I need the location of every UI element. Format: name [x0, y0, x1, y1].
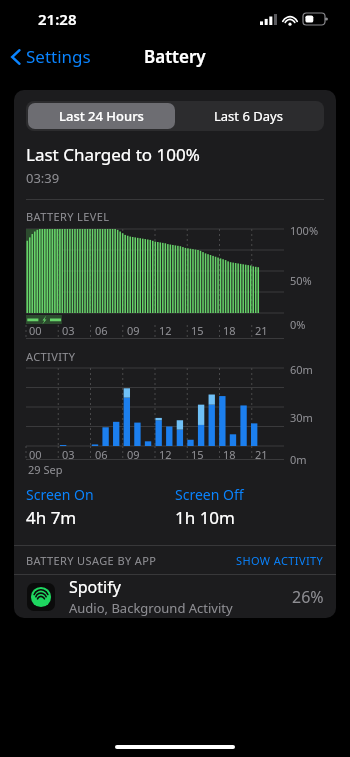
staticText: BATTERY LEVEL [26, 209, 110, 224]
staticText: Screen Off [175, 485, 244, 504]
staticText: Last 6 Days [214, 107, 283, 125]
staticText: 06 [95, 323, 108, 338]
button[interactable]: SHOW ACTIVITY [236, 553, 324, 568]
staticText: BATTERY USAGE BY APP [26, 553, 157, 568]
staticText: ACTIVITY [26, 349, 76, 364]
staticText: 0% [290, 317, 306, 332]
staticText: Spotify [69, 576, 121, 598]
staticText: 15 [191, 447, 204, 462]
button[interactable]: Settings [8, 45, 91, 68]
staticText: Screen On [26, 485, 94, 504]
button[interactable]: Spotify [14, 575, 336, 618]
staticText: 03 [62, 323, 75, 338]
staticText: 00 [29, 323, 42, 338]
staticText: 100% [290, 223, 319, 238]
staticText: 12 [159, 447, 172, 462]
staticText: 06 [95, 447, 108, 462]
button[interactable]: Last 24 Hours [28, 103, 175, 129]
staticText: 18 [223, 323, 236, 338]
staticText: 60m [290, 362, 313, 377]
staticText: 29 Sep [28, 462, 63, 477]
staticText: 0m [290, 452, 307, 467]
staticText: 15 [191, 323, 204, 338]
staticText: 03 [62, 447, 75, 462]
staticText: 18 [223, 447, 236, 462]
staticText: Audio, Background Activity [69, 599, 233, 617]
staticText: 03:39 [26, 169, 60, 187]
staticText: 21 [255, 323, 268, 338]
staticText: Last 24 Hours [59, 107, 144, 125]
staticText: 21 [255, 447, 268, 462]
staticText: 12 [159, 323, 172, 338]
staticText: 4h 7m [26, 506, 77, 529]
staticText: Settings [26, 45, 91, 68]
staticText: Last Charged to 100% [26, 143, 200, 166]
staticText: 1h 10m [175, 506, 235, 529]
staticText: 00 [29, 447, 42, 462]
staticText: 50% [290, 273, 312, 288]
staticText: 21:28 [38, 9, 77, 29]
staticText: 09 [127, 323, 140, 338]
staticText: 09 [127, 447, 140, 462]
staticText: Battery [144, 45, 206, 68]
staticText: 26% [292, 586, 324, 608]
button[interactable]: Last 6 Days [175, 103, 322, 129]
staticText: 30m [290, 410, 313, 425]
staticText: SHOW ACTIVITY [236, 553, 324, 568]
